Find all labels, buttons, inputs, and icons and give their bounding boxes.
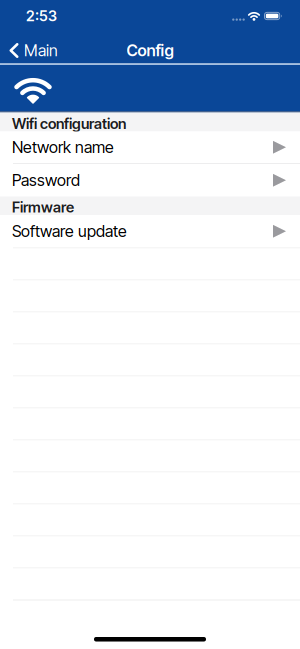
staticText: Config <box>126 41 173 60</box>
button[interactable]: Back <box>0 32 58 60</box>
button[interactable]: Software update <box>0 215 300 248</box>
button[interactable]: Password <box>0 164 300 196</box>
staticText: Firmware <box>12 199 74 216</box>
staticText: Wifi configuration <box>12 115 126 132</box>
button[interactable]: Network name <box>0 131 300 164</box>
staticText: Password <box>12 171 80 190</box>
staticText: Main <box>24 41 58 60</box>
staticText: Network name <box>12 138 114 157</box>
staticText: 2:53 <box>26 7 57 25</box>
staticText: Software update <box>12 222 127 241</box>
